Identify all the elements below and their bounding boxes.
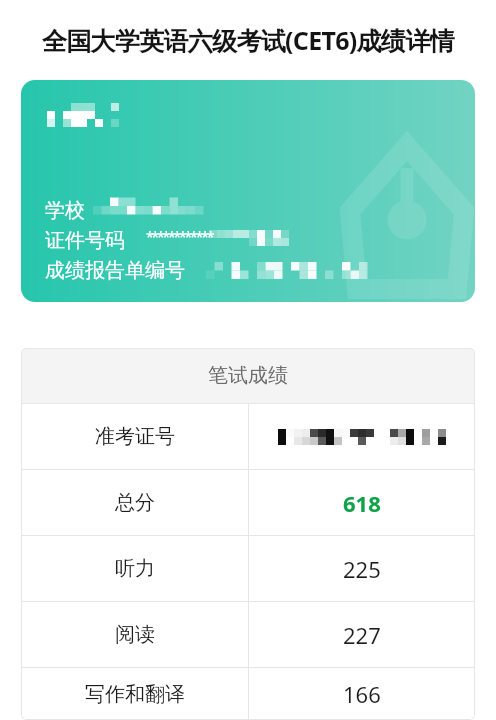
button[interactable]: 准考证号 xyxy=(21,404,475,469)
button[interactable]: 总分 xyxy=(21,470,475,535)
staticText: 225 xyxy=(343,554,381,584)
staticText: ************ xyxy=(146,227,213,246)
button[interactable]: 阅读 xyxy=(21,602,475,667)
staticText: 全国大学英语六级考试(CET6)成绩详情 xyxy=(42,23,454,57)
staticText: 166 xyxy=(343,679,381,709)
button[interactable]: 写作和翻译 xyxy=(21,668,475,720)
staticText: 成绩报告单编号 xyxy=(45,258,185,283)
staticText: 写作和翻译 xyxy=(85,682,185,707)
staticText: 学校 xyxy=(45,198,85,223)
staticText: 听力 xyxy=(115,556,155,581)
staticText: 准考证号 xyxy=(95,424,175,449)
staticText: 笔试成绩 xyxy=(208,363,288,388)
staticText: 227 xyxy=(343,620,381,650)
button[interactable]: 学校 xyxy=(21,80,475,302)
staticText: 阅读 xyxy=(115,622,155,647)
button[interactable]: 听力 xyxy=(21,536,475,601)
staticText: 618 xyxy=(343,488,381,518)
staticText: 证件号码 xyxy=(45,228,125,253)
staticText: 总分 xyxy=(115,490,155,515)
